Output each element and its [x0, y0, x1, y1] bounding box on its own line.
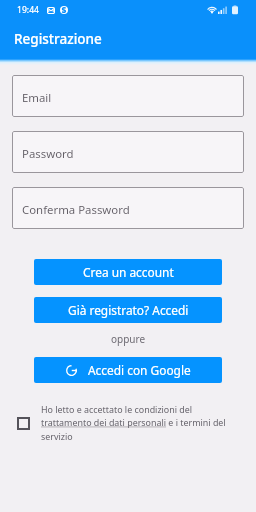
- staticText: Conferma Password: [22, 202, 130, 218]
- button[interactable]: Email: [12, 75, 244, 117]
- button[interactable]: Conferma Password: [12, 187, 244, 229]
- staticText: Già registrato? Accedi: [68, 302, 189, 318]
- staticText: Password: [22, 146, 74, 162]
- staticText: Accedi con Google: [88, 362, 191, 378]
- staticText: Email: [22, 90, 52, 106]
- button[interactable]: Accedi con Google: [34, 357, 222, 383]
- button[interactable]: Password: [12, 131, 244, 173]
- staticText: oppure: [111, 332, 146, 346]
- button[interactable]: Crea un account: [34, 259, 222, 285]
- staticText: 19:44: [17, 4, 39, 16]
- staticText: Crea un account: [83, 264, 174, 280]
- button[interactable]: Accetta le condizioni: [17, 417, 30, 430]
- staticText: Registrazione: [14, 30, 102, 48]
- button[interactable]: Già registrato? Accedi: [34, 297, 222, 323]
- button[interactable]: Ho letto e accettato le condizioni del t…: [41, 403, 232, 442]
